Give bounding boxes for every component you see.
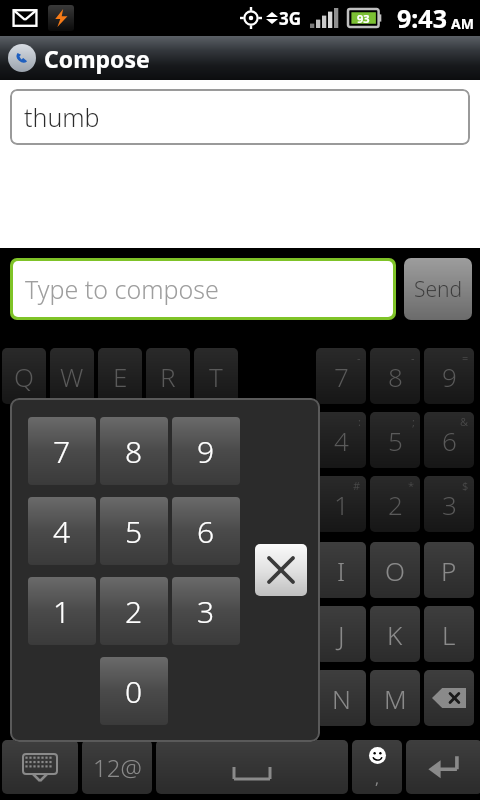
button[interactable]: Compose — [0, 36, 480, 80]
staticText: 12@ — [93, 751, 142, 784]
staticText: 0 — [125, 671, 143, 712]
button[interactable]: 2 — [370, 476, 420, 532]
button[interactable]: 1 — [316, 476, 366, 532]
staticText: 7 — [53, 431, 71, 472]
staticText: 5 — [125, 511, 143, 552]
staticText: 8 — [388, 359, 403, 394]
button[interactable]: 4 — [316, 412, 366, 468]
staticText: Compose — [44, 43, 150, 74]
button[interactable]: O — [370, 542, 420, 598]
staticText: J — [338, 617, 345, 652]
staticText: 93 — [357, 11, 370, 26]
button[interactable]: P — [424, 542, 474, 598]
button[interactable]: Emoji — [352, 740, 402, 794]
button[interactable]: 3 — [172, 577, 240, 645]
staticText: = — [462, 350, 469, 365]
button[interactable]: 9 — [424, 348, 474, 404]
staticText: K — [387, 617, 403, 652]
staticText: thumb — [24, 100, 100, 134]
button[interactable]: 4 — [28, 497, 96, 565]
staticText: 8 — [125, 431, 143, 472]
button[interactable]: Hide keyboard — [2, 740, 78, 794]
staticText: R — [160, 359, 176, 394]
staticText: E — [113, 359, 128, 394]
staticText: N — [332, 681, 351, 716]
staticText: 1 — [334, 487, 349, 522]
button[interactable]: N — [316, 670, 366, 726]
button[interactable]: W — [50, 348, 94, 404]
staticText: 1 — [53, 591, 71, 632]
button[interactable]: 5 — [100, 497, 168, 565]
staticText: Q — [14, 359, 34, 394]
button[interactable]: 5 — [370, 412, 420, 468]
button[interactable]: Q — [2, 348, 46, 404]
button[interactable]: Type to compose — [13, 261, 393, 317]
button[interactable]: 6 — [424, 412, 474, 468]
staticText: T — [209, 359, 223, 394]
staticText: W — [60, 359, 84, 394]
staticText: AM — [451, 14, 474, 33]
staticText: M — [384, 681, 407, 716]
staticText: O — [385, 553, 405, 588]
button[interactable]: 7 — [28, 417, 96, 485]
button[interactable]: 12@ — [82, 740, 152, 794]
button[interactable]: R — [146, 348, 190, 404]
button[interactable]: Close keypad — [255, 544, 307, 596]
staticText: & — [460, 414, 469, 429]
staticText: L — [442, 617, 456, 652]
button[interactable]: L — [424, 606, 474, 662]
staticText: * — [408, 478, 415, 493]
button[interactable]: T — [194, 348, 238, 404]
staticText: P — [441, 553, 457, 588]
staticText: 4 — [53, 511, 71, 552]
staticText: I — [337, 553, 346, 588]
staticText: , — [375, 768, 380, 788]
staticText: 7 — [334, 359, 349, 394]
staticText: 2 — [388, 487, 403, 522]
button[interactable]: 8 — [370, 348, 420, 404]
staticText: 3 — [442, 487, 457, 522]
staticText: 2 — [125, 591, 143, 632]
button[interactable]: Backspace — [424, 670, 474, 726]
button[interactable]: 2 — [100, 577, 168, 645]
button[interactable]: thumb — [10, 89, 470, 145]
staticText: 9:43 — [397, 1, 447, 35]
button[interactable]: M — [370, 670, 420, 726]
button[interactable]: Enter — [406, 740, 480, 794]
button[interactable]: 7 — [316, 348, 366, 404]
button[interactable]: Space — [156, 740, 348, 794]
staticText: Type to compose — [25, 272, 219, 306]
staticText: # — [353, 478, 361, 493]
staticText: 6 — [442, 423, 457, 458]
staticText: 5 — [388, 423, 403, 458]
staticText: Send — [414, 275, 463, 304]
button[interactable]: J — [316, 606, 366, 662]
button[interactable]: 3 — [424, 476, 474, 532]
button[interactable]: 0 — [100, 657, 168, 725]
staticText: ; — [412, 414, 415, 429]
button[interactable]: E — [98, 348, 142, 404]
button[interactable]: 1 — [28, 577, 96, 645]
button[interactable]: K — [370, 606, 420, 662]
staticText: 9 — [442, 359, 457, 394]
button[interactable]: I — [316, 542, 366, 598]
staticText: 9 — [197, 431, 215, 472]
button[interactable]: Send — [404, 258, 472, 320]
button[interactable]: 6 — [172, 497, 240, 565]
staticText: 4 — [334, 423, 349, 458]
staticText: $ — [462, 478, 469, 493]
staticText: - — [411, 350, 415, 365]
staticText: 6 — [197, 511, 215, 552]
staticText: : — [358, 414, 361, 429]
staticText: 3G — [279, 7, 302, 30]
staticText: 3 — [197, 591, 215, 632]
staticText: - — [357, 350, 361, 365]
button[interactable]: 9 — [172, 417, 240, 485]
button[interactable]: 8 — [100, 417, 168, 485]
